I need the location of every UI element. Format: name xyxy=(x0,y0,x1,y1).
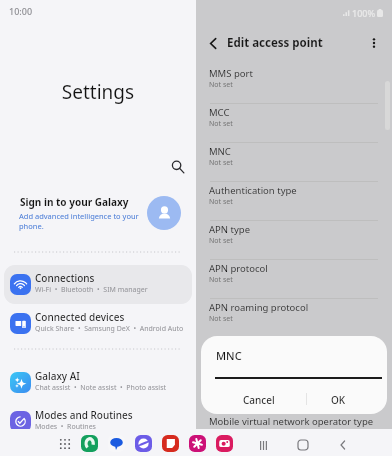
button[interactable]: Store xyxy=(189,435,206,452)
staticText: Not set xyxy=(209,158,233,168)
staticText: Not set xyxy=(209,80,233,90)
staticText: APN type xyxy=(209,223,250,236)
button[interactable]: MCC xyxy=(196,103,392,142)
staticText: APN roaming protocol xyxy=(209,301,309,314)
button[interactable]: MMS port xyxy=(196,64,392,103)
staticText: Mobile virtual network operator type xyxy=(209,415,374,428)
staticText: Not set xyxy=(209,119,233,129)
button[interactable]: Back xyxy=(332,434,354,456)
staticText: MNC xyxy=(209,145,231,158)
staticText: Sign in to your Galaxy xyxy=(20,195,129,209)
staticText: Not set xyxy=(209,314,233,324)
staticText: Cancel xyxy=(243,393,275,407)
button[interactable]: APN roaming protocol xyxy=(196,298,392,337)
button[interactable]: Modes and Routines xyxy=(4,402,192,441)
button[interactable]: Internet xyxy=(135,435,152,452)
staticText: MMS port xyxy=(209,67,253,80)
staticText: 100% xyxy=(352,7,376,19)
staticText: OK xyxy=(331,393,346,407)
staticText: Not set xyxy=(209,197,233,207)
staticText: MCC xyxy=(209,106,230,119)
button[interactable]: Galaxy AI xyxy=(4,363,192,402)
button[interactable]: OK xyxy=(307,386,370,414)
staticText: Modes • Routines xyxy=(35,422,96,432)
button[interactable]: Cancel xyxy=(211,386,306,414)
button[interactable]: Back xyxy=(201,31,225,55)
staticText: Chat assist • Note assist • Photo assist xyxy=(35,383,167,393)
staticText: Add advanced intelligence to your phone. xyxy=(19,211,152,231)
staticText: Galaxy AI xyxy=(35,369,80,383)
staticText: Connections xyxy=(35,271,95,285)
button[interactable]: Phone xyxy=(81,435,98,452)
staticText: APN protocol xyxy=(209,262,268,275)
button[interactable]: MNC xyxy=(196,142,392,181)
button[interactable]: Connected devices xyxy=(4,304,192,343)
staticText: MNC xyxy=(216,348,242,363)
button[interactable]: Messages xyxy=(108,435,125,452)
staticText: Not set xyxy=(209,236,233,246)
button[interactable]: Recents xyxy=(252,434,274,456)
staticText: Authentication type xyxy=(209,184,297,197)
staticText: Wi-Fi • Bluetooth • SIM manager xyxy=(35,285,148,295)
button[interactable]: Gallery xyxy=(162,435,179,452)
button[interactable]: APN type xyxy=(196,220,392,259)
button[interactable]: Home xyxy=(292,434,314,456)
staticText: Settings xyxy=(0,79,196,105)
button[interactable]: Search xyxy=(165,154,191,180)
staticText: 10:00 xyxy=(9,5,33,17)
button[interactable]: Authentication type xyxy=(196,181,392,220)
button[interactable]: More options xyxy=(362,31,386,55)
button[interactable]: All apps xyxy=(59,438,71,450)
staticText: Not set xyxy=(209,275,233,285)
staticText: Connected devices xyxy=(35,310,125,324)
staticText: Quick Share • Samsung DeX • Android Auto xyxy=(35,324,184,334)
button[interactable]: Sign in to your Galaxy xyxy=(0,189,196,241)
button[interactable]: Connections xyxy=(4,265,192,304)
staticText: Modes and Routines xyxy=(35,408,133,422)
button[interactable]: Camera xyxy=(216,435,233,452)
button[interactable]: APN protocol xyxy=(196,259,392,298)
staticText: Edit access point xyxy=(227,35,323,51)
